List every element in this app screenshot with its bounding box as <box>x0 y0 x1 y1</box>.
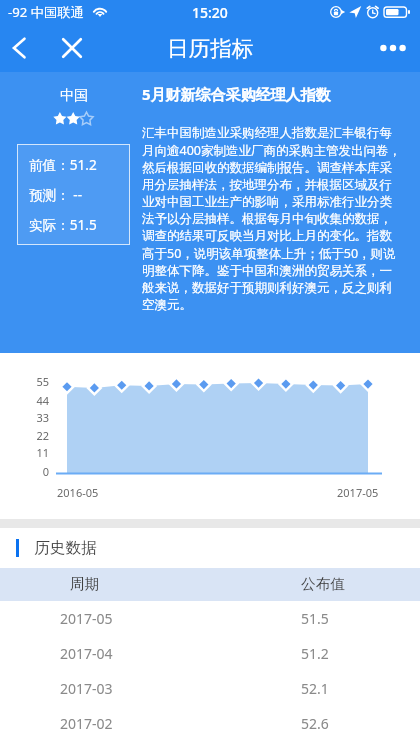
button[interactable]: More options <box>376 31 410 65</box>
staticText: 55 <box>20 374 49 389</box>
staticText: 5月财新综合采购经理人指数 <box>142 84 331 104</box>
button[interactable]: 2017-05 <box>0 601 420 636</box>
button[interactable]: Back <box>1 31 35 65</box>
staticText: 公布值 <box>301 575 346 594</box>
staticText: 22 <box>20 428 49 443</box>
staticText: 11 <box>20 445 49 460</box>
staticText: 52.6 <box>301 714 329 733</box>
staticText: 51.2 <box>301 644 329 663</box>
staticText: 51.5 <box>301 609 329 628</box>
staticText: 2017-05 <box>60 609 113 628</box>
staticText: 2017-04 <box>60 644 113 663</box>
staticText: 前值：51.2 <box>29 155 97 174</box>
staticText: 2017-02 <box>60 714 113 733</box>
staticText: -92 中国联通 <box>8 3 84 21</box>
button[interactable]: 2017-04 <box>0 636 420 671</box>
staticText: 0 <box>20 464 49 479</box>
staticText: 52.1 <box>301 679 329 698</box>
staticText: 2017-05 <box>337 485 379 500</box>
staticText: 2017-03 <box>60 679 113 698</box>
staticText: 中国 <box>60 87 88 105</box>
staticText: 实际：51.5 <box>29 215 97 234</box>
staticText: 33 <box>20 410 49 425</box>
staticText: 周期 <box>70 575 100 594</box>
staticText: 15:20 <box>192 3 228 22</box>
staticText: 汇丰中国制造业采购经理人指数是汇丰银行每 月向逾400家制造业厂商的采购主管发出… <box>142 125 401 313</box>
staticText: 日历指标 <box>167 35 254 62</box>
staticText: 44 <box>20 393 49 408</box>
staticText: 预测： -- <box>29 185 83 204</box>
staticText: 历史数据 <box>34 538 97 558</box>
button[interactable]: Close <box>55 31 89 65</box>
staticText: 2016-05 <box>57 485 99 500</box>
button[interactable]: 2017-03 <box>0 671 420 706</box>
button[interactable]: 2017-02 <box>0 706 420 741</box>
